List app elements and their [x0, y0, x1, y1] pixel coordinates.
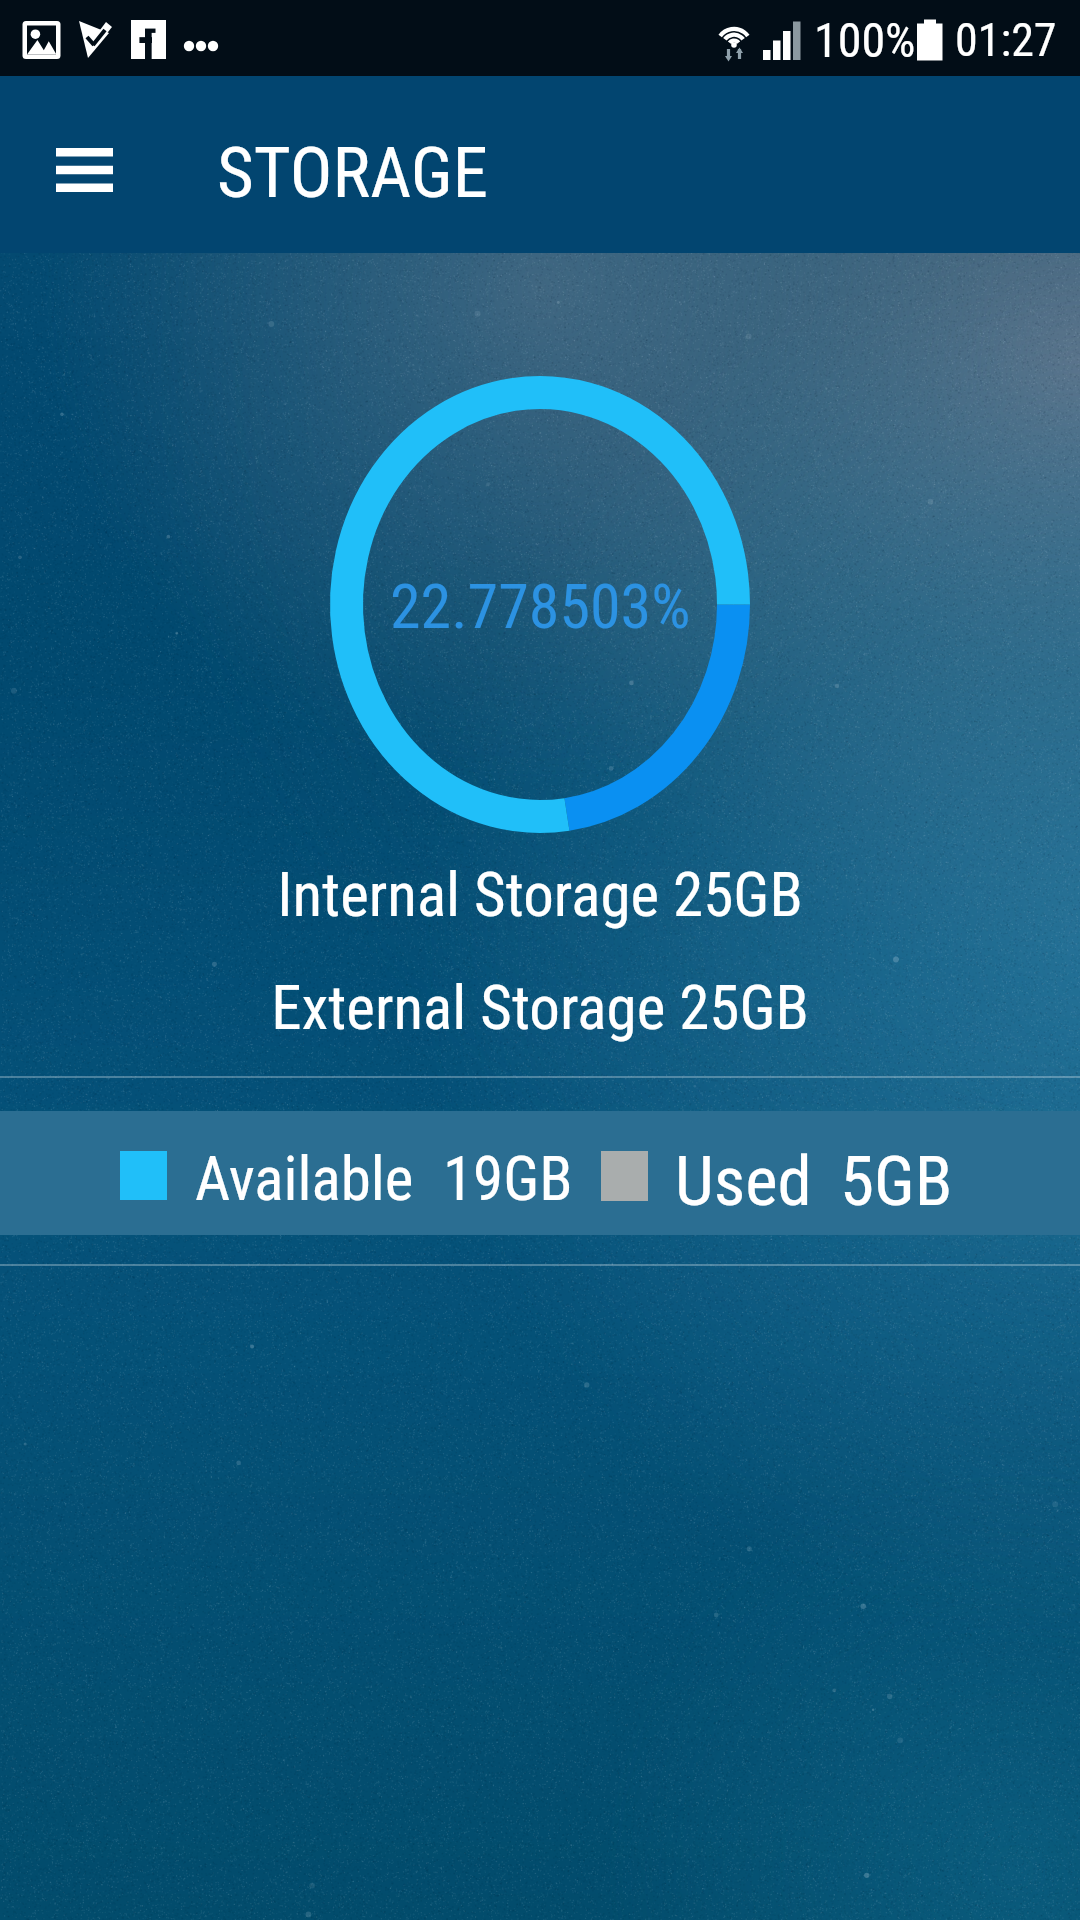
- button[interactable]: Open navigation menu: [20, 123, 148, 217]
- staticText: Internal Storage 25GB: [277, 859, 803, 930]
- staticText: Used: [675, 1141, 812, 1222]
- staticText: 19GB: [443, 1143, 573, 1214]
- staticText: 01:27: [955, 13, 1057, 67]
- staticText: 22.778503%: [390, 570, 691, 643]
- staticText: STORAGE: [217, 131, 488, 214]
- staticText: 100%: [814, 12, 916, 68]
- staticText: External Storage 25GB: [271, 972, 809, 1043]
- staticText: Available: [195, 1143, 414, 1214]
- staticText: 5GB: [840, 1141, 953, 1222]
- button[interactable]: Available: [0, 1111, 1080, 1235]
